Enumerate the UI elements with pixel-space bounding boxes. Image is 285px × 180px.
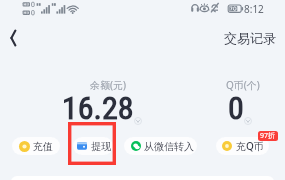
staticText: 余额(元) bbox=[90, 78, 126, 92]
button[interactable]: 充Q币 bbox=[216, 137, 269, 155]
button[interactable]: 交易记录 bbox=[224, 30, 285, 46]
button[interactable]: 0 bbox=[228, 89, 252, 127]
staticText: 从微信转入 bbox=[144, 140, 194, 153]
staticText: 97折 bbox=[260, 131, 276, 141]
staticText: 0 bbox=[228, 89, 244, 127]
staticText: 充Q币 bbox=[236, 139, 264, 153]
staticText: 充值 bbox=[33, 140, 53, 153]
button[interactable]: 充值 bbox=[12, 137, 60, 155]
staticText: 16.28 bbox=[62, 89, 134, 127]
staticText: Q币(个) bbox=[226, 78, 260, 92]
button[interactable]: 16.28 bbox=[62, 89, 142, 127]
staticText: 提现 bbox=[91, 140, 111, 153]
staticText: 8:12 bbox=[244, 2, 264, 16]
button[interactable]: 从微信转入 bbox=[124, 137, 197, 155]
button[interactable]: Back bbox=[0, 24, 28, 52]
button[interactable]: 提现 bbox=[73, 137, 113, 155]
